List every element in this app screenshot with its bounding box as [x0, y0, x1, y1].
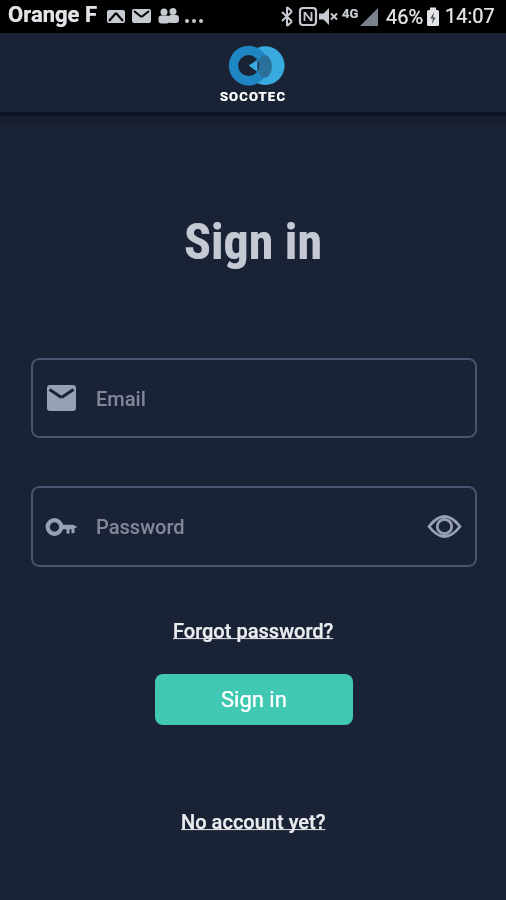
staticText: 14:07 [445, 4, 495, 27]
button[interactable]: No account yet? [181, 810, 326, 833]
staticText: SOCOTEC [0, 89, 506, 104]
button[interactable]: Email [31, 358, 477, 438]
button[interactable]: Sign in [155, 674, 353, 725]
staticText: Sign in [0, 213, 506, 272]
staticText: Sign in [221, 687, 287, 713]
staticText: 4G [342, 6, 359, 21]
button[interactable] [428, 514, 461, 539]
button[interactable]: Password [31, 486, 477, 567]
staticText: 46% [386, 5, 424, 28]
staticText: Orange F [8, 2, 98, 28]
button[interactable]: Forgot password? [173, 619, 334, 642]
staticText: Password [96, 515, 185, 538]
staticText: Email [96, 387, 146, 410]
